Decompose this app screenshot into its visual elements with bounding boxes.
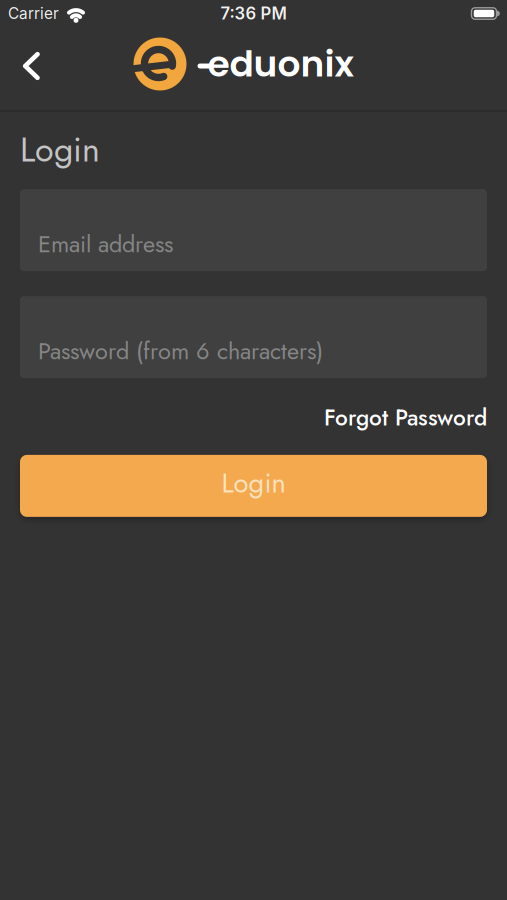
button[interactable]: Back <box>0 42 54 90</box>
staticText: Password (from 6 characters) <box>38 334 323 368</box>
button[interactable]: Forgot Password <box>324 401 487 434</box>
staticText: Forgot Password <box>324 401 487 434</box>
button[interactable]: Login <box>20 455 487 517</box>
button[interactable]: Password (from 6 characters) <box>20 296 487 378</box>
staticText: Login <box>221 463 285 503</box>
staticText: Carrier <box>8 4 59 23</box>
staticText: eduonix <box>207 39 353 89</box>
staticText: 7:36 PM <box>220 3 286 24</box>
button[interactable]: Email address <box>20 189 487 271</box>
staticText: Email address <box>38 227 173 261</box>
staticText: Login <box>20 125 100 174</box>
